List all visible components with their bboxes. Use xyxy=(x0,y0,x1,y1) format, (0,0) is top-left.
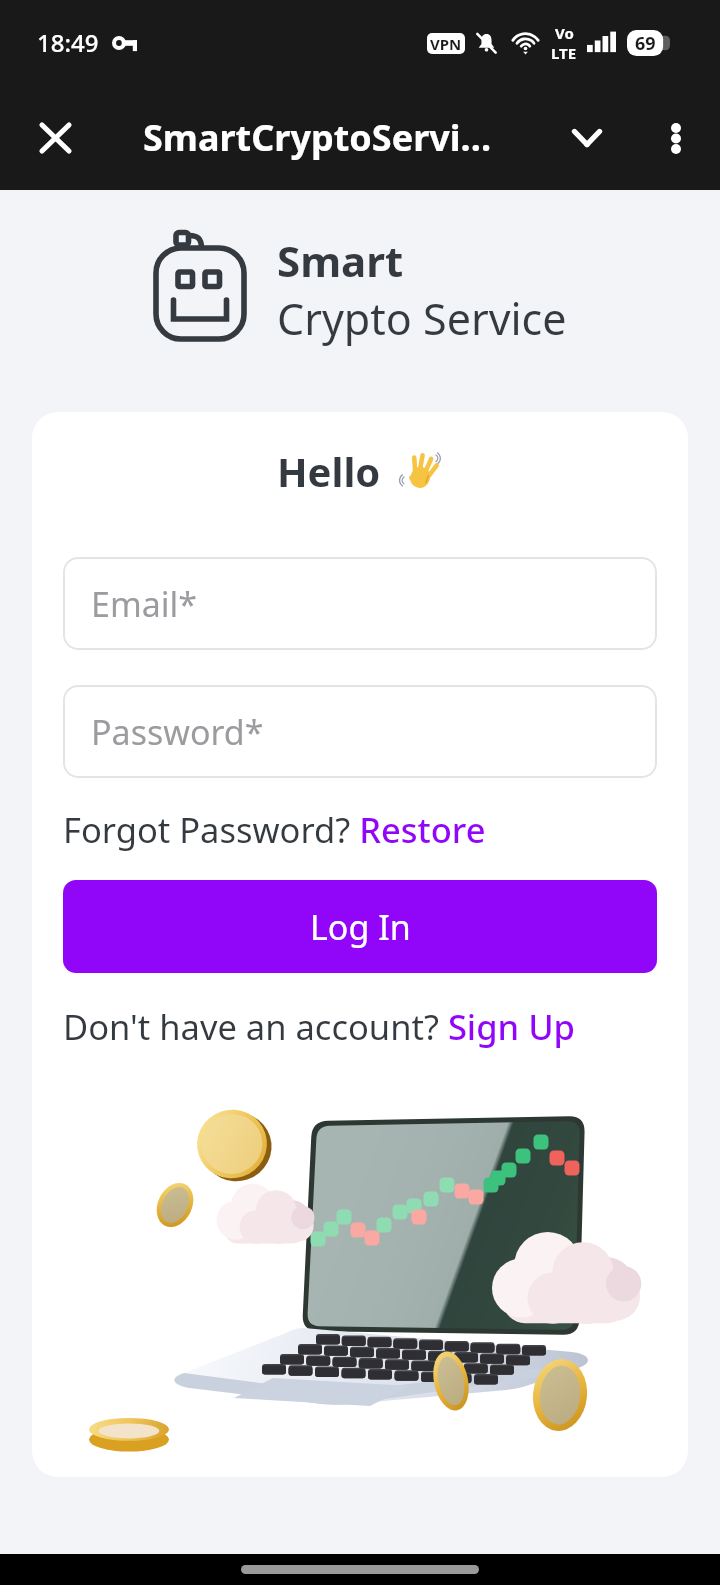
button[interactable]: Log In xyxy=(63,880,657,973)
staticText: Log In xyxy=(310,904,411,950)
staticText: Vo xyxy=(555,23,574,43)
button[interactable]: More options xyxy=(637,99,715,177)
staticText: LTE xyxy=(551,43,577,63)
button[interactable]: Expand xyxy=(548,99,626,177)
button[interactable]: Don't have an account? Sign Up xyxy=(63,1003,576,1050)
staticText: 69 xyxy=(635,31,656,56)
staticText: Don't have an account? Sign Up xyxy=(63,1003,576,1050)
staticText: Crypto Service xyxy=(277,289,567,348)
button[interactable]: Forgot Password? Restore xyxy=(63,806,486,853)
staticText: Hello xyxy=(277,444,381,498)
staticText: VPN xyxy=(430,34,462,54)
staticText: Password* xyxy=(91,709,264,755)
button[interactable]: Close xyxy=(14,97,96,179)
staticText: SmartCryptoServi… xyxy=(143,113,492,162)
button[interactable]: Password* xyxy=(63,685,657,778)
staticText: Forgot Password? Restore xyxy=(63,806,486,853)
staticText: Email* xyxy=(91,581,198,627)
staticText: 18:49 xyxy=(37,26,99,59)
staticText: Smart xyxy=(277,232,404,289)
button[interactable]: Email* xyxy=(63,557,657,650)
